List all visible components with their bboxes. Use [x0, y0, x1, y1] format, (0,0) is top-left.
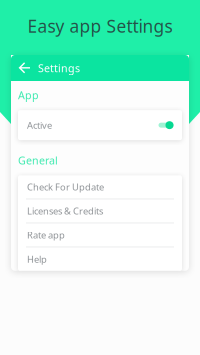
staticText: Rate app — [27, 229, 65, 241]
staticText: Check For Update — [27, 181, 104, 193]
button[interactable]: Help — [18, 247, 182, 271]
staticText: App — [18, 88, 39, 102]
button[interactable]: Back — [19, 56, 31, 80]
button[interactable]: Check For Update — [18, 175, 182, 199]
staticText: Settings — [38, 61, 80, 75]
staticText: Easy app Settings — [27, 14, 172, 37]
staticText: Active — [27, 119, 52, 131]
button[interactable]: Rate app — [18, 223, 182, 247]
button[interactable]: Licenses & Credits — [18, 199, 182, 223]
staticText: General — [18, 153, 58, 167]
button[interactable]: Active toggle — [157, 120, 174, 130]
staticText: Licenses & Credits — [27, 205, 103, 217]
staticText: Help — [27, 253, 47, 265]
